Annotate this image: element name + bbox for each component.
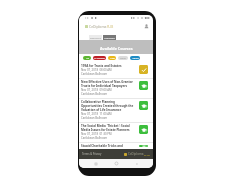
button[interactable]: The Social Media 'Thicket': Social Media… (79, 123, 153, 143)
button[interactable]: New (108, 56, 116, 60)
staticText: Collaborative Planning Opportunities Cre… (81, 100, 134, 112)
staticText: Stupid Charitable Tricks and Common Plan… (81, 144, 123, 147)
button[interactable]: Terms & Privacy (82, 152, 102, 156)
staticText: The Social Media 'Thicket': Social Media… (81, 124, 130, 132)
button[interactable]: New Effective Uses of Non-Grantor Trusts… (79, 79, 153, 99)
staticText: Caribbean Ballroom (81, 92, 108, 96)
button[interactable]: In Process (93, 56, 106, 60)
staticText: Caribbean Ballroom (81, 136, 108, 140)
button[interactable]: Stupid Charitable Tricks and Common Plan… (79, 143, 153, 149)
staticText: Nov 07, 2018 01:30 PM (81, 132, 112, 136)
staticText: Saved (132, 57, 139, 60)
staticText: Available Courses (100, 46, 133, 51)
staticText: PLUS (144, 153, 150, 156)
button[interactable]: Done (118, 56, 128, 60)
button[interactable]: 199A for Trusts and Estates (79, 63, 153, 79)
button[interactable]: All (83, 56, 91, 60)
staticText: Nov 07, 2018 11:00 AM (81, 112, 112, 116)
button[interactable]: CeDiploma (124, 152, 150, 156)
staticText: In Process (94, 57, 105, 60)
staticText: CeDiploma (128, 152, 144, 156)
staticText: New (110, 57, 115, 60)
button[interactable]: Collaborative Planning Opportunities Cre… (79, 99, 153, 123)
staticText: Caribbean Ballroom (81, 72, 108, 76)
staticText: 199A for Trusts and Estates (81, 64, 122, 68)
staticText: New Effective Uses of Non-Grantor Trusts… (81, 80, 133, 88)
staticText: Nov 07, 2018 09:00 AM (81, 88, 112, 92)
button[interactable]: Saved (130, 56, 140, 60)
staticText: Caribbean Ballroom (81, 116, 108, 120)
button[interactable]: Home (113, 160, 120, 167)
staticText: COURSES (104, 36, 115, 39)
staticText: Nov 07, 2018 08:00 AM (81, 68, 112, 72)
button[interactable]: Course material (139, 145, 148, 147)
button[interactable]: Course material (139, 81, 148, 90)
staticText: All (86, 57, 89, 60)
button[interactable]: CONTENT (89, 35, 102, 40)
button[interactable]: COURSES (103, 35, 116, 40)
staticText: Done (120, 57, 126, 60)
staticText: PLUS (107, 25, 114, 29)
staticText: CONTENT (90, 36, 101, 39)
button[interactable]: Back (133, 160, 140, 167)
button[interactable]: Course material (139, 101, 148, 110)
button[interactable]: Course material (139, 125, 148, 134)
staticText: CeDiploma (89, 24, 107, 29)
button[interactable]: Completed (139, 65, 148, 74)
button[interactable]: Account (143, 23, 150, 30)
button[interactable]: Recents (92, 160, 99, 167)
